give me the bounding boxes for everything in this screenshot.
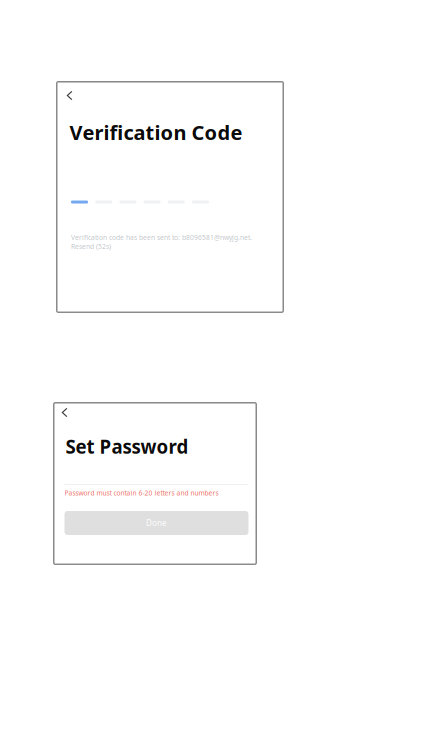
button[interactable]: Back bbox=[56, 82, 82, 108]
button[interactable]: Resend (52s) bbox=[71, 242, 111, 251]
staticText: Done bbox=[146, 518, 167, 528]
staticText: Resend (52s) bbox=[71, 242, 111, 251]
staticText: Verification Code bbox=[69, 119, 242, 146]
staticText: Verification code has been sent to: b809… bbox=[71, 233, 252, 242]
button[interactable]: Back bbox=[51, 399, 77, 425]
staticText: Password must contain 6-20 letters and n… bbox=[64, 488, 218, 497]
staticText: Set Password bbox=[65, 434, 188, 459]
